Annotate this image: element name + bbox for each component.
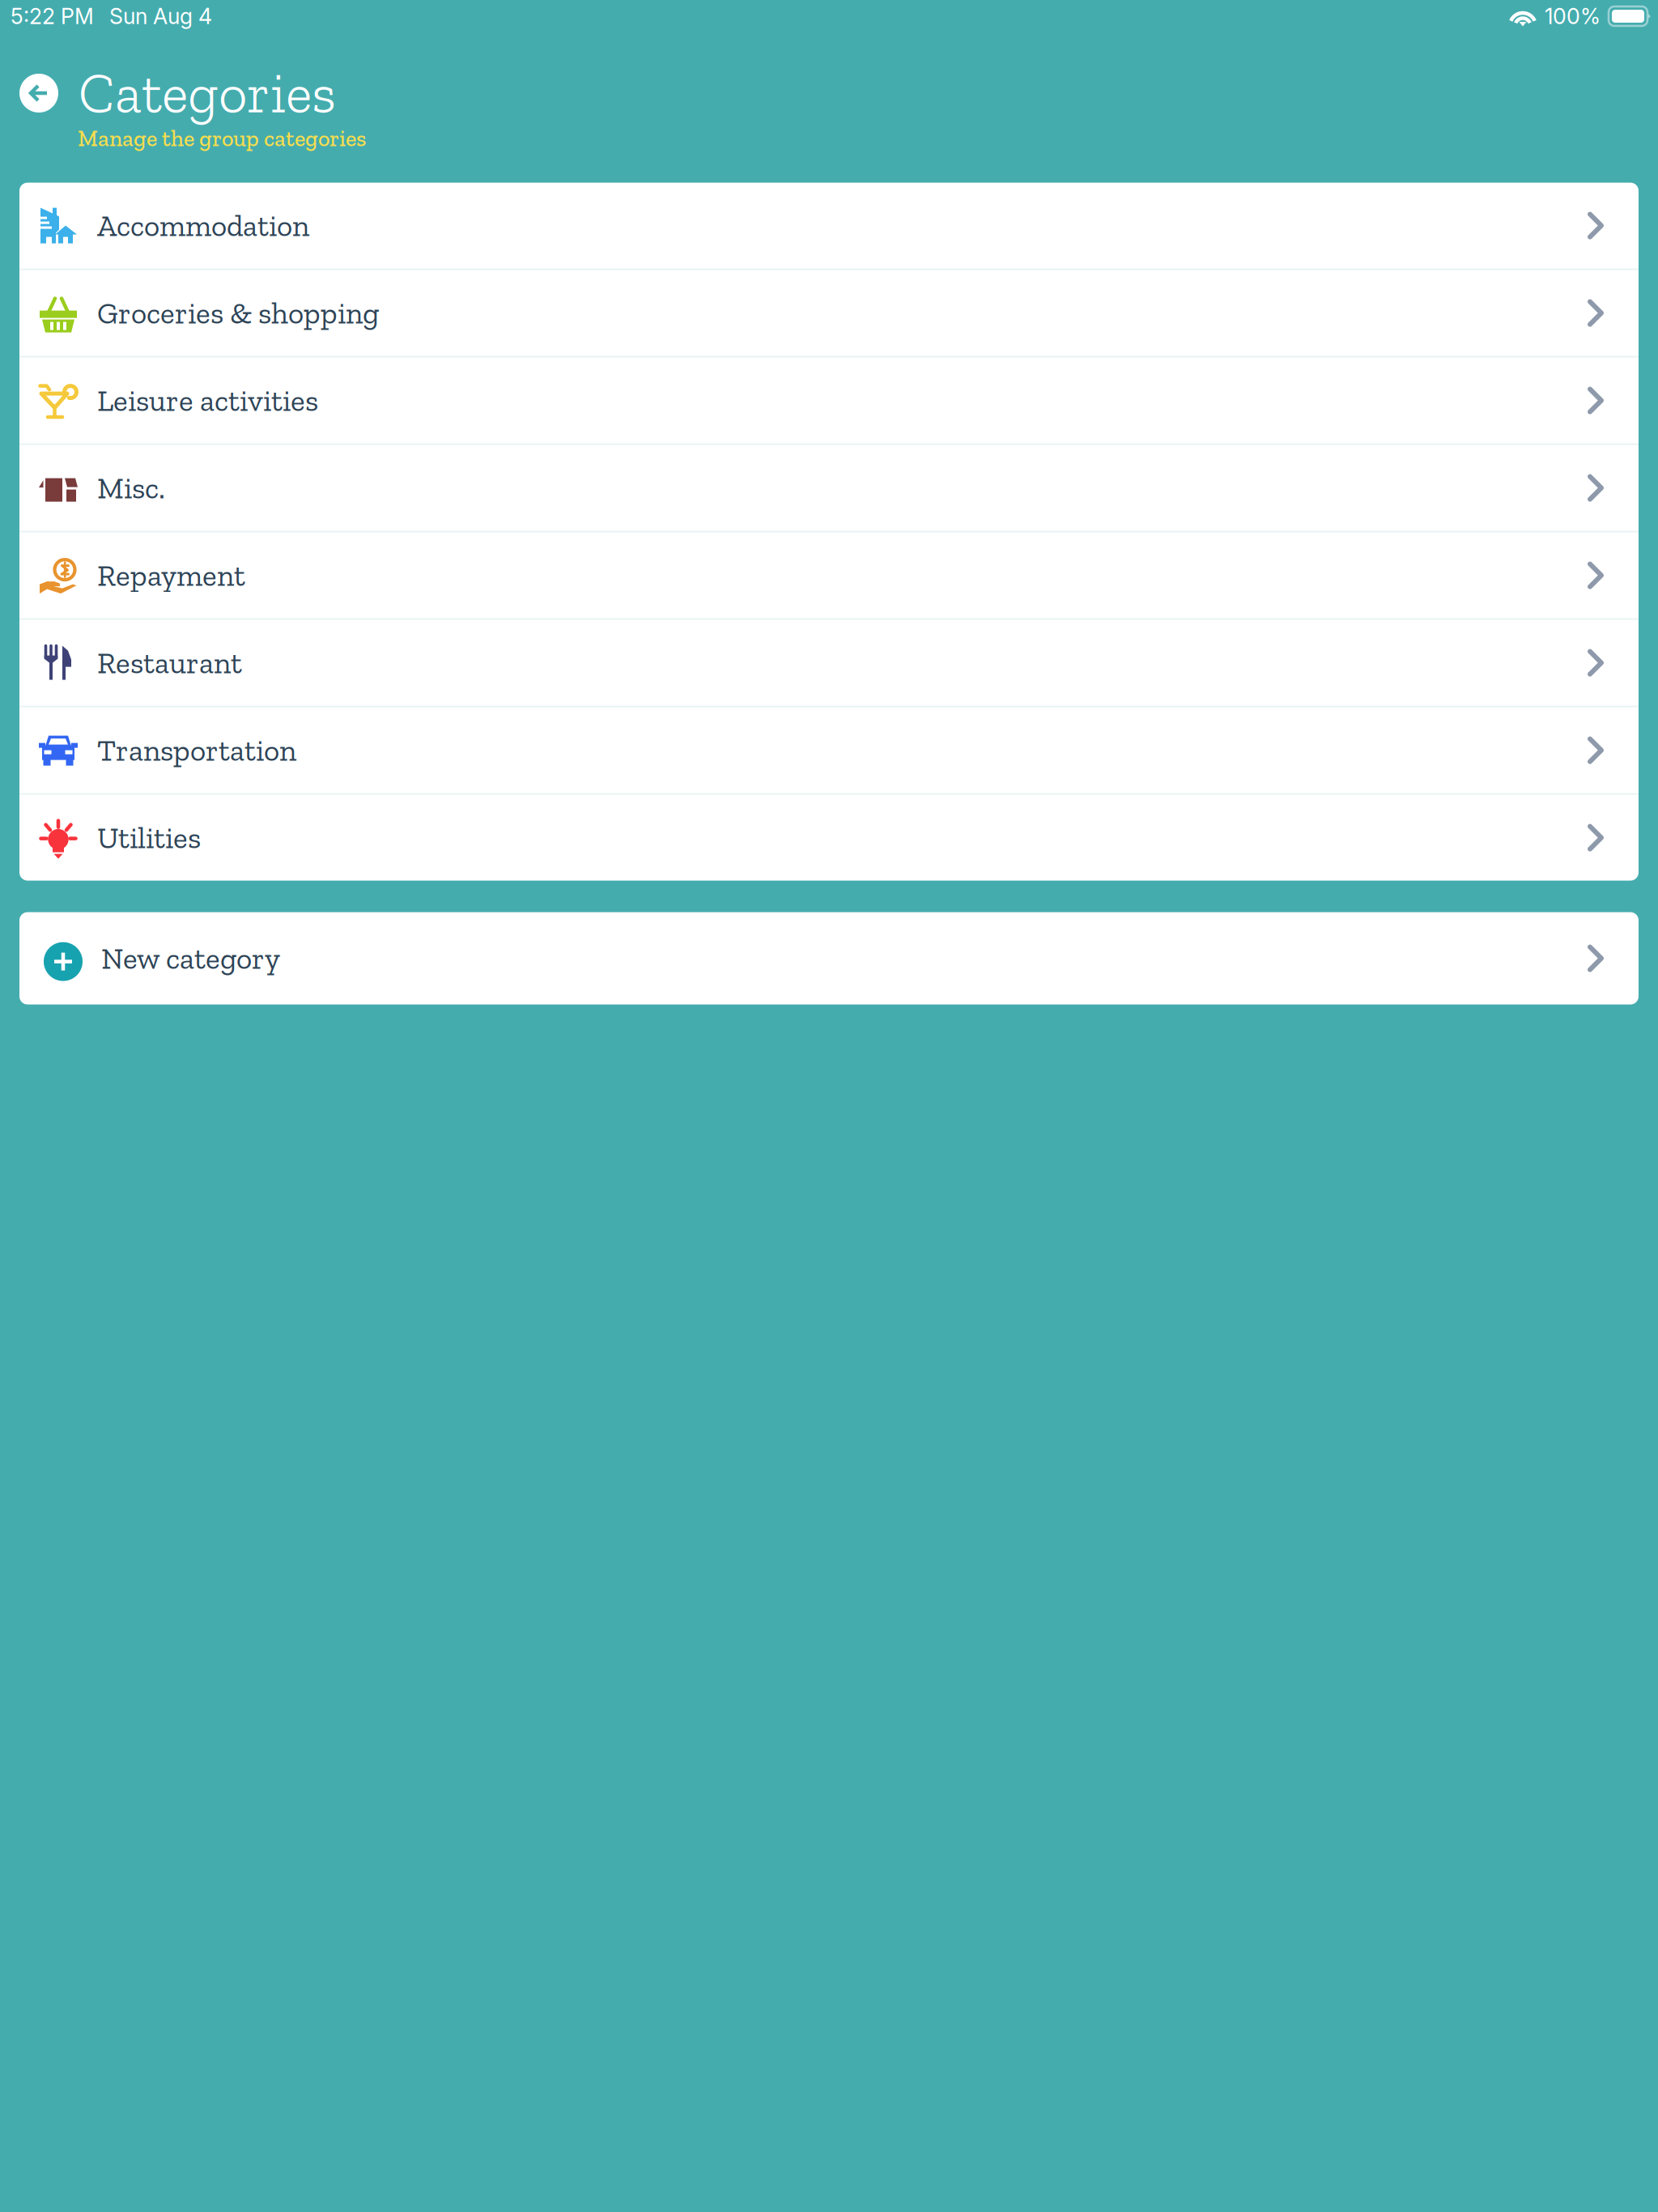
staticText: Sun Aug 4 [109,3,212,29]
button[interactable]: Repayment [19,532,1639,618]
staticText: Misc. [97,470,165,506]
staticText: Repayment [97,557,245,593]
staticText: Utilities [97,820,201,856]
button[interactable]: Leisure activities [19,358,1639,443]
button[interactable]: Transportation [19,707,1639,793]
button[interactable]: Back [19,74,58,113]
staticText: Restaurant [97,645,242,681]
button[interactable]: New category [19,912,1639,1004]
staticText: Groceries & shopping [97,295,379,331]
staticText: 5:22 PM [11,3,94,29]
staticText: 100% [1545,3,1601,29]
button[interactable]: Utilities [19,795,1639,881]
staticText: New category [101,940,280,976]
staticText: Manage the group categories [78,125,366,152]
button[interactable]: Groceries & shopping [19,270,1639,356]
button[interactable]: Restaurant [19,620,1639,706]
staticText: Accommodation [97,207,309,244]
staticText: Categories [79,59,336,127]
button[interactable]: Misc. [19,445,1639,531]
staticText: Leisure activities [97,382,318,419]
button[interactable]: Accommodation [19,183,1639,268]
staticText: Transportation [97,732,296,768]
